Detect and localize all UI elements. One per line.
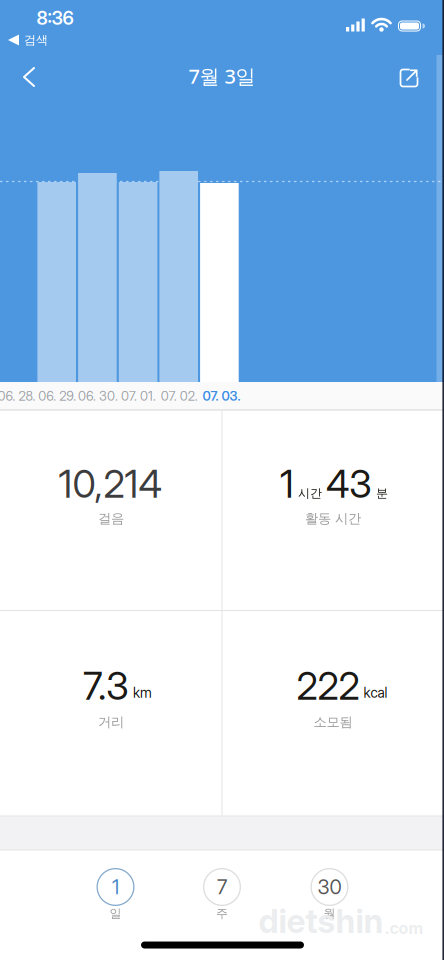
staticText: 8:36 [36,7,73,29]
button[interactable]: 월별 보기 [310,868,348,906]
button[interactable]: 주별 보기 [203,868,241,906]
staticText: 06. 30. [78,388,118,404]
staticText: 222 kcal [296,664,387,708]
staticText: 1 [112,875,119,899]
button[interactable]: 일별 보기 [96,868,134,906]
staticText: 주 [216,906,228,921]
staticText: 1 시간 43 분 [280,462,388,506]
staticText: 걸음 [98,510,124,527]
staticText: dietshin [258,901,383,941]
staticText: 일 [109,906,121,921]
staticText: 07. 03. [202,388,240,404]
button[interactable]: 검색으로 돌아가기 [8,33,48,47]
staticText: 07. 01. [121,388,156,404]
staticText: 소모됨 [313,714,352,730]
staticText: 7 [217,875,227,899]
staticText: 활동 시간 [305,510,361,527]
staticText: 거리 [98,714,124,730]
staticText: 7월 3일 [188,63,255,89]
staticText: 검색 [24,33,48,47]
staticText: 7.3 km [83,664,152,708]
staticText: .com [384,919,423,938]
staticText: 30 [317,875,341,899]
staticText: 10,214 [58,461,161,507]
button[interactable]: 공유 [397,66,421,90]
staticText: 07. 02. [161,388,198,404]
staticText: 06. 28. [0,388,35,404]
staticText: 06. 29. [38,388,76,404]
button[interactable]: 뒤로 [23,67,43,87]
staticText: 월 [323,906,335,921]
